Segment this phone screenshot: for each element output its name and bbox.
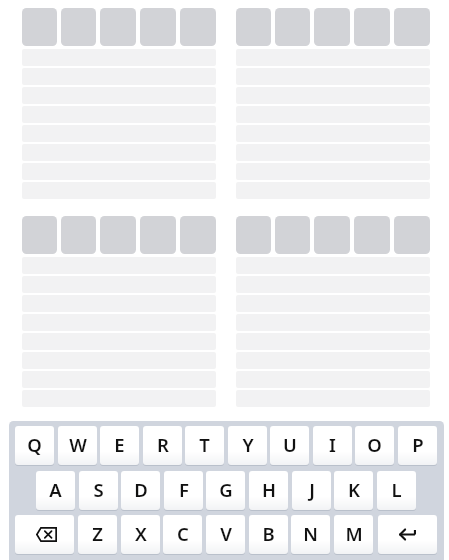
button[interactable]: Z bbox=[78, 515, 117, 554]
staticText: C bbox=[177, 521, 189, 546]
staticText: H bbox=[262, 477, 276, 502]
staticText: W bbox=[69, 432, 87, 457]
staticText: T bbox=[199, 432, 210, 457]
button[interactable]: C bbox=[163, 515, 202, 554]
button[interactable]: S bbox=[79, 471, 118, 510]
button[interactable]: B bbox=[249, 515, 288, 554]
button[interactable]: M bbox=[334, 515, 373, 554]
staticText: O bbox=[367, 432, 382, 457]
button[interactable]: D bbox=[121, 471, 160, 510]
staticText: P bbox=[412, 432, 424, 457]
staticText: Y bbox=[242, 432, 254, 457]
staticText: X bbox=[135, 521, 147, 546]
button[interactable]: T bbox=[185, 426, 224, 465]
button[interactable]: I bbox=[313, 426, 352, 465]
button[interactable]: Enter bbox=[378, 515, 437, 554]
staticText: F bbox=[179, 477, 189, 502]
staticText: U bbox=[283, 432, 297, 457]
staticText: K bbox=[348, 477, 360, 502]
staticText: B bbox=[262, 521, 275, 546]
staticText: L bbox=[391, 477, 402, 502]
button[interactable]: Q bbox=[15, 426, 54, 465]
button[interactable]: Backspace bbox=[15, 515, 74, 554]
button[interactable]: F bbox=[164, 471, 203, 510]
staticText: I bbox=[329, 432, 336, 457]
button[interactable]: N bbox=[291, 515, 330, 554]
staticText: J bbox=[309, 477, 315, 502]
button[interactable]: V bbox=[206, 515, 245, 554]
button[interactable]: X bbox=[121, 515, 160, 554]
staticText: Q bbox=[27, 432, 42, 457]
button[interactable]: W bbox=[58, 426, 97, 465]
staticText: M bbox=[345, 521, 363, 546]
staticText: Z bbox=[92, 521, 103, 546]
button[interactable]: Y bbox=[228, 426, 267, 465]
button[interactable]: K bbox=[334, 471, 373, 510]
staticText: E bbox=[114, 432, 125, 457]
staticText: N bbox=[303, 521, 318, 546]
button[interactable]: R bbox=[143, 426, 182, 465]
button[interactable]: E bbox=[100, 426, 139, 465]
button[interactable]: J bbox=[292, 471, 331, 510]
button[interactable]: A bbox=[36, 471, 75, 510]
button[interactable]: G bbox=[206, 471, 245, 510]
button[interactable]: P bbox=[398, 426, 437, 465]
staticText: S bbox=[93, 477, 104, 502]
staticText: G bbox=[219, 477, 233, 502]
button[interactable]: U bbox=[270, 426, 309, 465]
button[interactable]: O bbox=[355, 426, 394, 465]
staticText: A bbox=[49, 477, 62, 502]
staticText: D bbox=[134, 477, 148, 502]
staticText: V bbox=[220, 521, 232, 546]
button[interactable]: H bbox=[249, 471, 288, 510]
button[interactable]: L bbox=[377, 471, 416, 510]
staticText: R bbox=[157, 432, 169, 457]
